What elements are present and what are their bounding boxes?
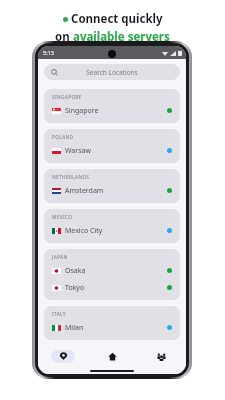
staticText: Connect quickly	[71, 11, 163, 27]
staticText: 5:13	[43, 49, 54, 56]
button[interactable]: Singapore	[44, 102, 180, 119]
button[interactable]: Search Locations	[44, 64, 180, 80]
button[interactable]: Milan	[44, 319, 180, 336]
button[interactable]: Groups	[137, 345, 186, 367]
button[interactable]: Warsaw	[44, 142, 180, 159]
button[interactable]: Osaka	[44, 262, 180, 279]
staticText: JAPAN	[52, 254, 68, 261]
button[interactable]: Home	[88, 345, 137, 367]
staticText: Tokyo	[65, 283, 85, 293]
staticText: Mexico City	[65, 226, 103, 236]
staticText: Milan	[65, 323, 84, 333]
staticText: on	[55, 29, 73, 45]
staticText: SINGAPORE	[52, 94, 82, 101]
staticText: MEXICO	[52, 214, 73, 221]
staticText: Singapore	[65, 106, 99, 116]
staticText: available servers	[73, 29, 170, 45]
staticText: POLAND	[52, 134, 74, 141]
staticText: ITALY	[52, 311, 66, 318]
staticText: Amsterdam	[65, 186, 104, 196]
staticText: Warsaw	[65, 146, 91, 156]
button[interactable]: Amsterdam	[44, 182, 180, 199]
button[interactable]: Locations	[38, 345, 88, 367]
button[interactable]: Tokyo	[44, 279, 180, 296]
button[interactable]: Mexico City	[44, 222, 180, 239]
staticText: Osaka	[65, 266, 86, 276]
staticText: Search Locations	[86, 68, 138, 77]
staticText: NETHERLANDS	[52, 174, 90, 181]
